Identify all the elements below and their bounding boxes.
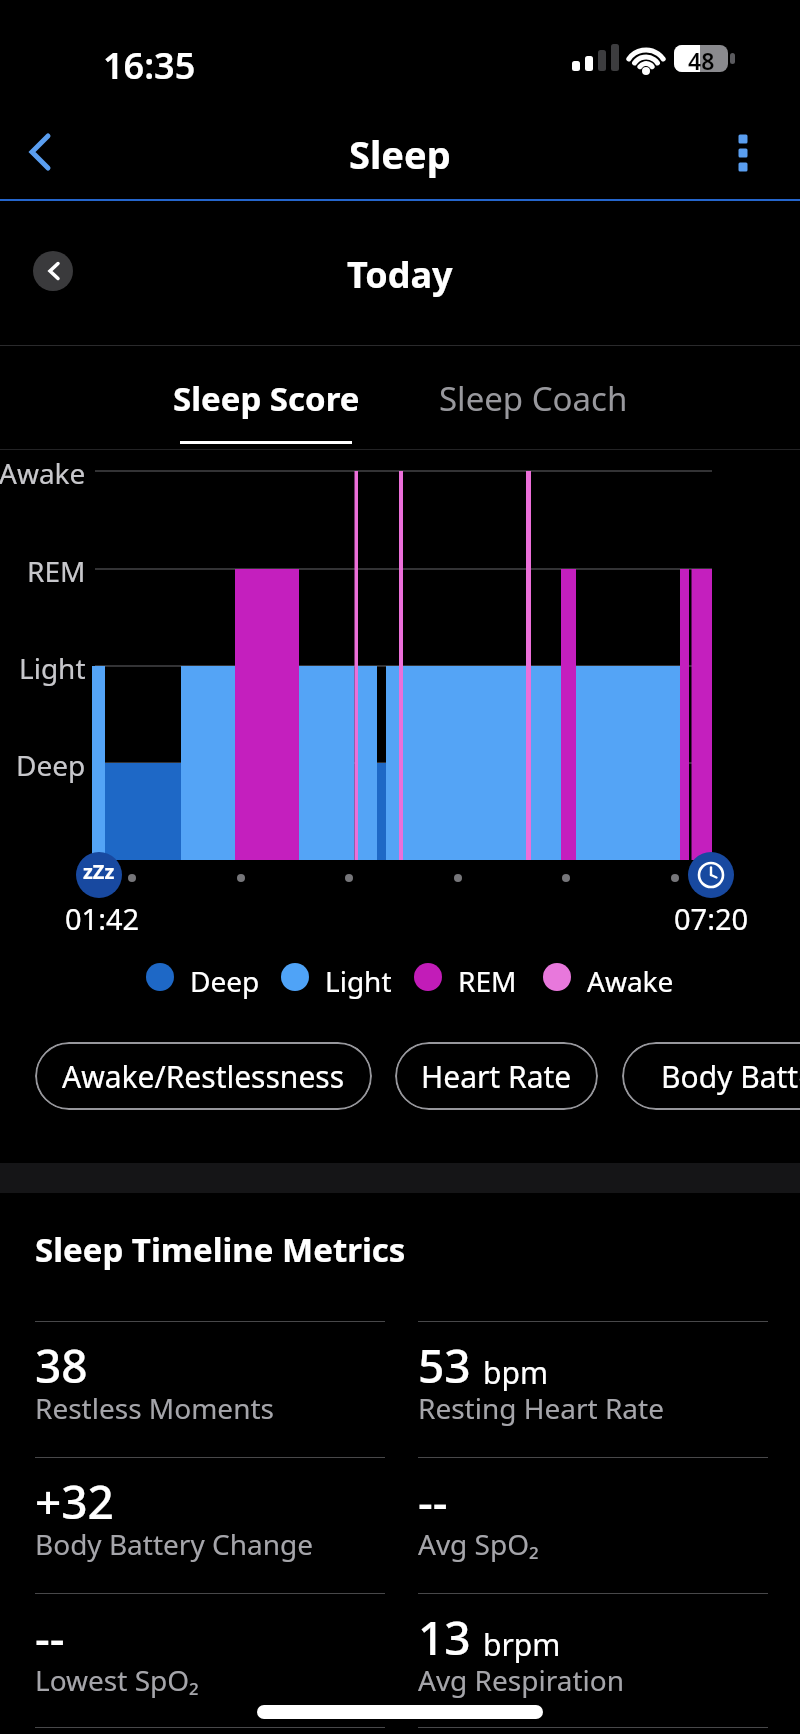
staticText: -- — [35, 1606, 65, 1669]
staticText: 07:20 — [674, 899, 749, 938]
staticText: Sleep — [349, 128, 451, 180]
staticText: Body Battery — [661, 1056, 800, 1097]
button[interactable] — [33, 251, 73, 291]
button[interactable]: Sleep Coach — [393, 352, 673, 444]
staticText: Sleep Coach — [439, 376, 628, 421]
staticText: Awake — [0, 454, 86, 492]
staticText: Sleep Score — [173, 376, 360, 421]
staticText: Restless Moments — [35, 1389, 274, 1427]
staticText: 48 — [688, 45, 715, 72]
staticText: Resting Heart Rate — [418, 1389, 664, 1427]
staticText: Avg SpO₂ — [418, 1525, 539, 1563]
staticText: Deep — [16, 746, 86, 784]
staticText: Awake/Restlessness — [62, 1056, 345, 1097]
button[interactable]: Heart Rate — [395, 1042, 598, 1110]
staticText: Lowest SpO₂ — [35, 1661, 199, 1699]
button[interactable]: Body Battery — [622, 1042, 800, 1110]
staticText: 16:35 — [103, 41, 196, 90]
button[interactable] — [724, 130, 762, 182]
staticText: Heart Rate — [421, 1056, 572, 1097]
button[interactable] — [14, 126, 66, 178]
staticText: REM — [27, 552, 86, 590]
staticText: zZz — [83, 858, 115, 885]
staticText: Deep — [190, 962, 260, 1000]
staticText: Today — [347, 250, 453, 299]
staticText: Body Battery Change — [35, 1525, 313, 1563]
button[interactable]: Sleep Score — [126, 352, 406, 444]
staticText: Awake — [587, 962, 674, 1000]
staticText: bpm — [483, 1352, 548, 1393]
staticText: Sleep Timeline Metrics — [35, 1227, 406, 1272]
staticText: Light — [325, 962, 392, 1000]
staticText: -- — [418, 1470, 448, 1533]
staticText: Light — [19, 649, 86, 687]
staticText: REM — [458, 962, 517, 1000]
staticText: Avg Respiration — [418, 1661, 624, 1699]
staticText: 38 — [35, 1334, 88, 1397]
button[interactable]: Awake/Restlessness — [35, 1042, 372, 1110]
staticText: brpm — [483, 1624, 561, 1665]
staticText: 01:42 — [65, 899, 140, 938]
staticText: 53 — [418, 1334, 471, 1397]
staticText: 13 — [418, 1606, 471, 1669]
staticText: +32 — [35, 1470, 114, 1533]
